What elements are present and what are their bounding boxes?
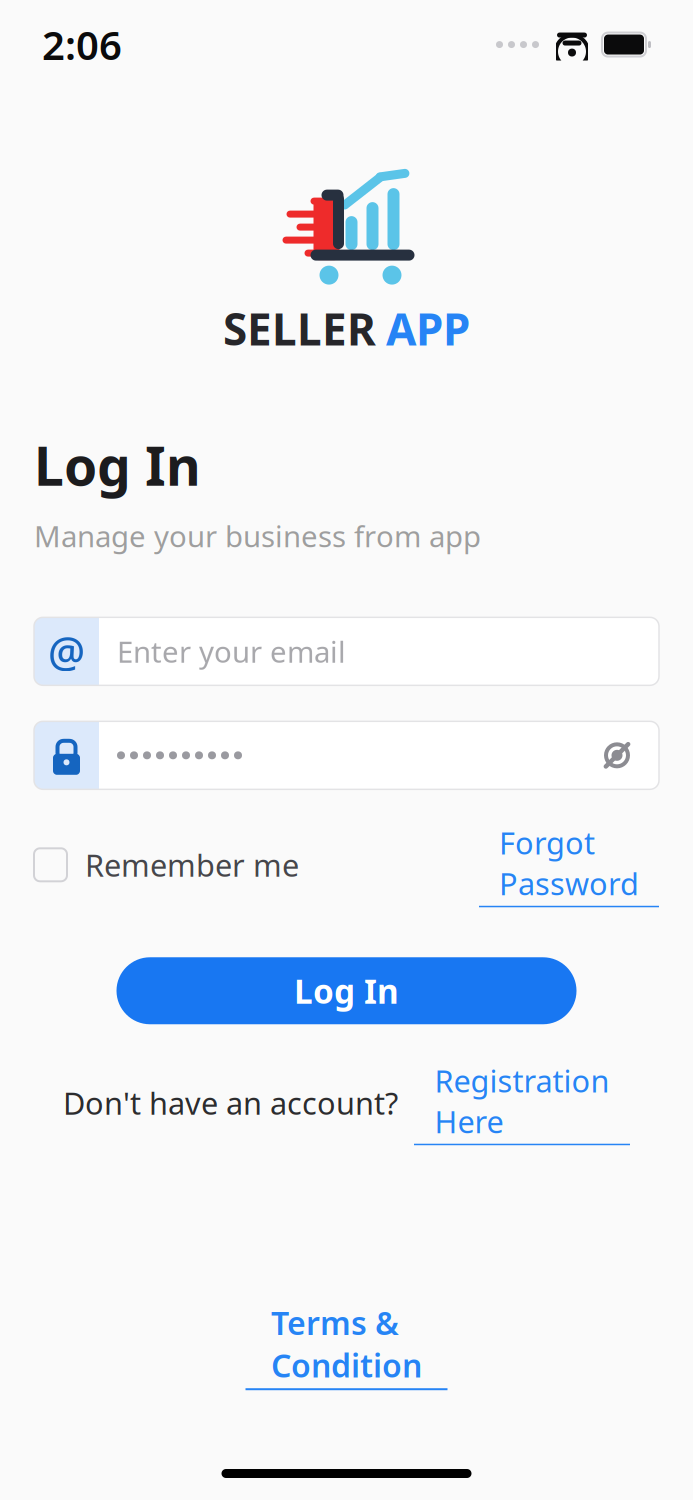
staticText: Terms & Condition [271,1301,422,1386]
button[interactable]: Log In [116,957,576,1024]
staticText: Forgot Password [499,822,639,904]
staticText: SELLER [223,299,376,357]
staticText: APP [386,299,470,357]
staticText: Registration Here [434,1060,609,1142]
staticText: Log In [294,969,399,1013]
staticText: Manage your business from app [34,516,481,555]
button[interactable]: Remember me [34,844,299,885]
staticText: Don't have an account? [63,1082,398,1123]
button[interactable]: Registration Here [414,1060,630,1145]
staticText: Enter your email [117,632,346,671]
staticText: Log In [34,429,201,500]
button[interactable]: Terms & Condition [245,1301,447,1390]
staticText: 2:06 [42,18,122,71]
button[interactable]: Forgot Password [479,822,659,907]
staticText: Remember me [85,844,299,885]
staticText: @ [48,624,85,679]
